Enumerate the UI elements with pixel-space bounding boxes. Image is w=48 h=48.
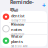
button[interactable]: Review notes [1,23,47,34]
staticText: Review notes [11,21,24,32]
button[interactable]: Call dentist [1,11,47,22]
staticText: Sat 8:00 AM [11,44,27,48]
button[interactable]: Water plants [1,35,47,46]
staticText: + [42,1,46,10]
staticText: Reminders [10,0,34,13]
staticText: Today 9:00 AM [11,19,26,26]
button[interactable]: Add [42,1,46,10]
staticText: Water plants [11,33,23,44]
staticText: Call dentist [11,8,25,18]
staticText: Tomorrow [11,32,24,36]
